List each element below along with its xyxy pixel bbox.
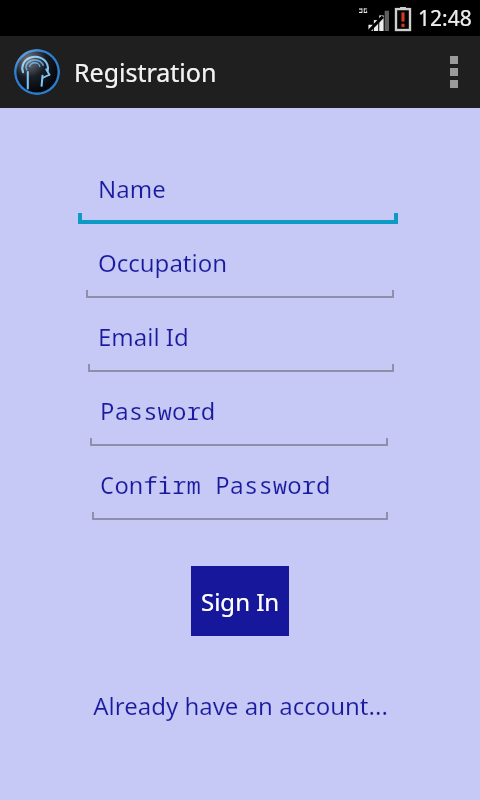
button[interactable]: Occupation <box>86 246 394 298</box>
button[interactable]: Name <box>78 172 398 224</box>
staticText: Email Id <box>98 320 189 353</box>
button[interactable]: Password <box>90 394 388 446</box>
staticText: Confirm Password <box>100 468 331 501</box>
button[interactable]: Confirm Password <box>92 468 388 520</box>
staticText: 12:48 <box>418 4 472 33</box>
staticText: Already have an account... <box>93 689 388 722</box>
staticText: Password <box>100 394 216 427</box>
staticText: Sign In <box>201 585 280 618</box>
button[interactable]: Sign In <box>191 566 289 636</box>
staticText: Name <box>98 172 166 205</box>
button[interactable]: App icon <box>14 49 60 95</box>
staticText: Registration <box>74 55 217 89</box>
button[interactable]: More options <box>428 36 480 108</box>
button[interactable]: Already have an account... <box>0 683 480 727</box>
staticText: Occupation <box>98 246 228 279</box>
button[interactable]: Email Id <box>88 320 394 372</box>
